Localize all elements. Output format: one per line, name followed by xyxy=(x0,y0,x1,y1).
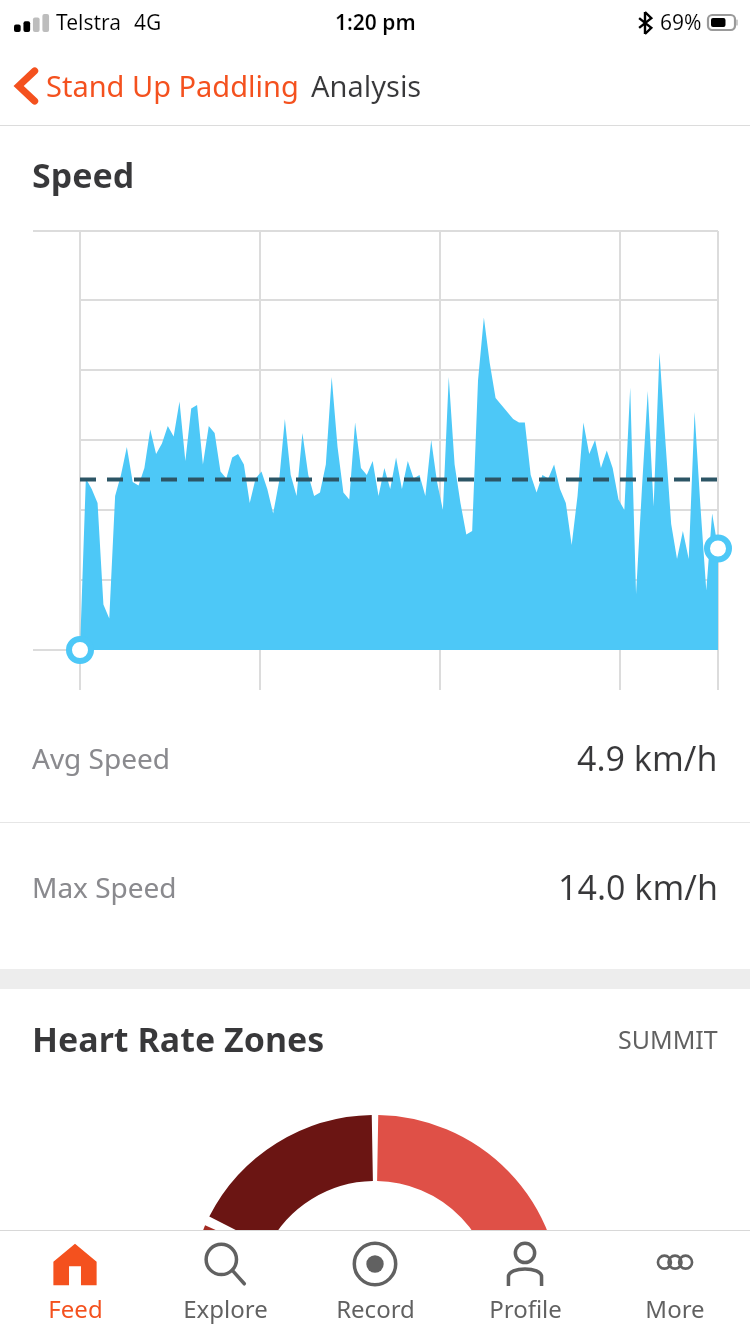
button[interactable]: Avg Speed xyxy=(0,694,750,823)
staticText: Record xyxy=(336,1292,415,1325)
staticText: Heart Rate Zones xyxy=(32,1016,325,1062)
staticText: Stand Up Paddling xyxy=(46,66,299,105)
staticText: Feed xyxy=(48,1292,103,1325)
staticText: Max Speed xyxy=(32,868,177,906)
button[interactable]: Feed xyxy=(0,1231,150,1334)
staticText: Profile xyxy=(489,1292,562,1325)
staticText: More xyxy=(645,1292,705,1325)
staticText: 1:20 pm xyxy=(335,8,416,37)
button[interactable]: Record xyxy=(300,1231,450,1334)
button[interactable]: Profile xyxy=(450,1231,600,1334)
button[interactable]: Max Speed xyxy=(0,823,750,951)
staticText: Telstra xyxy=(56,8,122,37)
button[interactable]: Stand Up Paddling xyxy=(0,58,303,113)
button[interactable]: SUMMIT xyxy=(618,1022,718,1056)
staticText: Analysis xyxy=(311,66,422,105)
button[interactable]: Explore xyxy=(150,1231,300,1334)
staticText: Explore xyxy=(183,1292,268,1325)
staticText: SUMMIT xyxy=(618,1022,718,1056)
staticText: Avg Speed xyxy=(32,739,171,777)
staticText: 14.0 km/h xyxy=(558,864,718,910)
staticText: 69% xyxy=(660,8,702,37)
staticText: Speed xyxy=(32,152,135,198)
button[interactable]: More xyxy=(600,1231,750,1334)
staticText: 4G xyxy=(134,8,162,37)
staticText: 4.9 km/h xyxy=(577,735,718,781)
